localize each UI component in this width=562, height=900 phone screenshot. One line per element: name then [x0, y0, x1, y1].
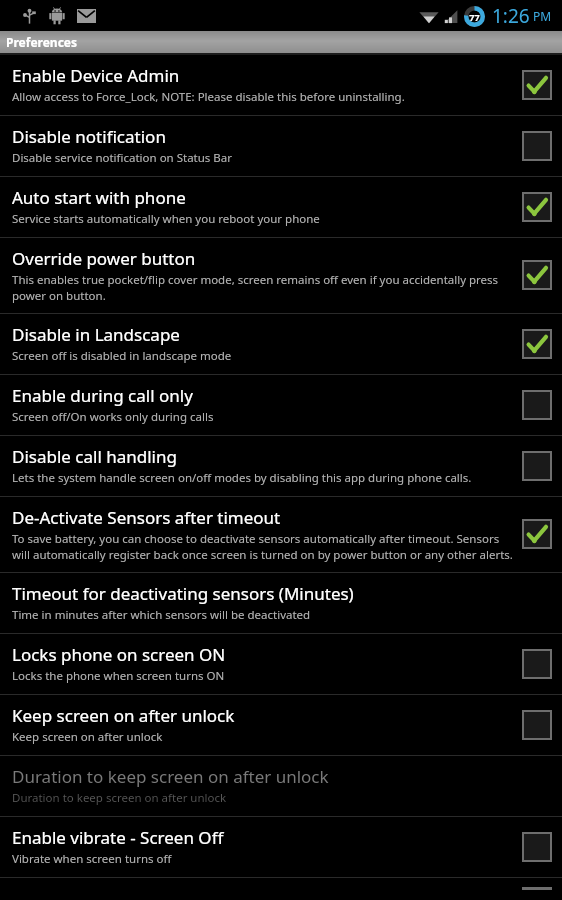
- staticText: Screen off is disabled in landscape mode: [12, 348, 232, 364]
- staticText: Duration to keep screen on after unlock: [12, 790, 227, 806]
- staticText: 1:26: [492, 3, 530, 29]
- button[interactable]: Locks phone on screen ON: [0, 634, 562, 694]
- staticText: Disable in Landscape: [12, 323, 180, 346]
- staticText: Enable during call only: [12, 384, 193, 407]
- button[interactable]: Disable notification: [0, 116, 562, 176]
- button[interactable]: Disable in Landscape: [0, 314, 562, 374]
- button[interactable]: Checked: [522, 192, 552, 222]
- staticText: To save battery, you can choose to deact…: [12, 531, 514, 562]
- staticText: Service starts automatically when you re…: [12, 211, 320, 227]
- staticText: Vibrate when screen turns off: [12, 851, 172, 867]
- staticText: Locks phone on screen ON: [12, 643, 226, 666]
- staticText: Timeout for deactivating sensors (Minute…: [12, 582, 354, 605]
- button[interactable]: Disable call handling: [0, 436, 562, 496]
- staticText: Enable Device Admin: [12, 64, 180, 87]
- button[interactable]: Checked: [522, 260, 552, 290]
- staticText: Keep screen on after unlock: [12, 729, 163, 745]
- button[interactable]: Unchecked: [522, 832, 552, 862]
- staticText: 77: [469, 11, 480, 23]
- button[interactable]: Enable vibrate - Screen Off: [0, 817, 562, 877]
- staticText: Disable notification: [12, 125, 166, 148]
- button[interactable]: Enable during call only: [0, 375, 562, 435]
- staticText: PM: [533, 8, 552, 24]
- staticText: Override power button: [12, 247, 196, 270]
- button[interactable]: Unchecked: [522, 131, 552, 161]
- staticText: Enable vibrate - Screen Off: [12, 826, 224, 849]
- button[interactable]: Unchecked: [522, 710, 552, 740]
- staticText: Disable call handling: [12, 445, 177, 468]
- button[interactable]: Unchecked: [522, 390, 552, 420]
- staticText: Auto start with phone: [12, 186, 186, 209]
- staticText: Screen off/On works only during calls: [12, 409, 214, 425]
- button[interactable]: Timeout for deactivating sensors (Minute…: [0, 573, 562, 633]
- staticText: Keep screen on after unlock: [12, 704, 235, 727]
- button[interactable]: Auto start with phone: [0, 177, 562, 237]
- button[interactable]: Checked: [522, 519, 552, 549]
- button[interactable]: Unchecked: [522, 451, 552, 481]
- button[interactable]: Keep screen on after unlock: [0, 695, 562, 755]
- button[interactable]: Duration to keep screen on after unlock: [0, 756, 562, 816]
- staticText: This enables true pocket/flip cover mode…: [12, 272, 514, 303]
- staticText: De-Activate Sensors after timeout: [12, 506, 281, 529]
- staticText: Lets the system handle screen on/off mod…: [12, 470, 472, 486]
- staticText: Time in minutes after which sensors will…: [12, 607, 311, 623]
- button[interactable]: De-Activate Sensors after timeout: [0, 497, 562, 572]
- staticText: Locks the phone when screen turns ON: [12, 668, 225, 684]
- button[interactable]: Checked: [522, 329, 552, 359]
- staticText: Preferences: [6, 34, 78, 50]
- button[interactable]: Unchecked: [522, 649, 552, 679]
- staticText: Duration to keep screen on after unlock: [12, 765, 329, 788]
- button[interactable]: Enable vibrate - Screen On: [0, 878, 562, 900]
- staticText: Disable service notification on Status B…: [12, 150, 233, 166]
- button[interactable]: Checked: [522, 70, 552, 100]
- staticText: Allow access to Force_Lock, NOTE: Please…: [12, 89, 405, 105]
- button[interactable]: Override power button: [0, 238, 562, 313]
- button[interactable]: Enable Device Admin: [0, 55, 562, 115]
